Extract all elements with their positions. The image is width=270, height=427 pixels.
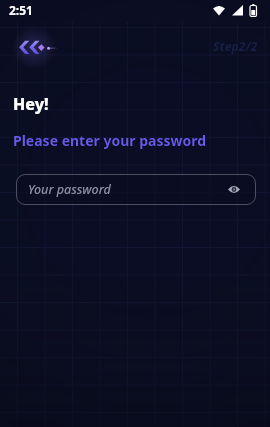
staticText: Step2/2 [213,38,258,54]
staticText: Your password [28,181,111,198]
staticText: Hey! [13,93,49,115]
button[interactable]: Your password [16,174,256,205]
staticText: 2:51 [9,2,33,18]
staticText: Please enter your password [13,131,207,150]
button[interactable] [10,34,62,58]
